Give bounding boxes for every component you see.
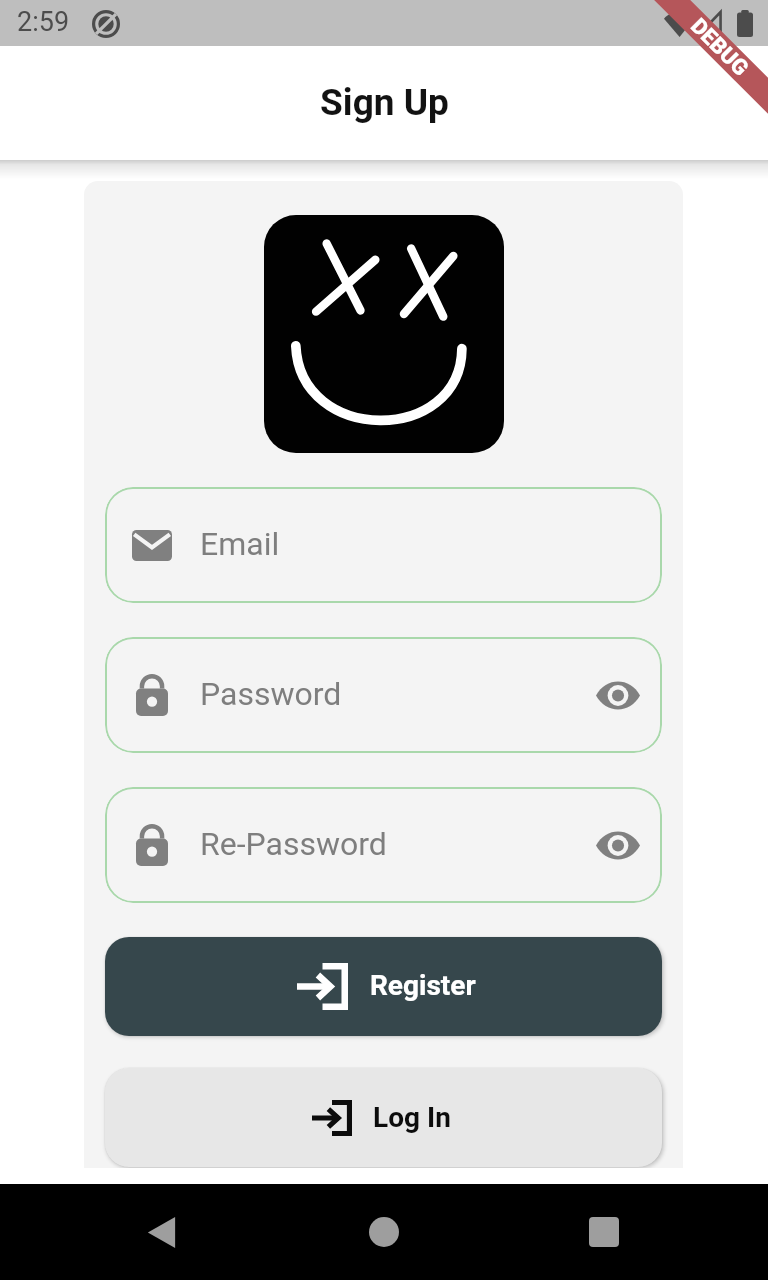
- button[interactable]: Email: [105, 487, 662, 603]
- staticText: Re-Password: [200, 825, 387, 863]
- button[interactable]: Log In: [105, 1068, 662, 1167]
- staticText: Register: [370, 969, 476, 1002]
- button[interactable]: Home: [344, 1192, 424, 1272]
- staticText: Password: [200, 675, 342, 713]
- button[interactable]: Re-Password: [105, 787, 662, 903]
- staticText: DEBUG: [685, 13, 754, 82]
- button[interactable]: Register: [105, 937, 662, 1036]
- button[interactable]: Toggle password visibility: [586, 813, 650, 877]
- button[interactable]: Password: [105, 637, 662, 753]
- button[interactable]: Back: [121, 1192, 201, 1272]
- staticText: Log In: [373, 1101, 451, 1134]
- staticText: 2:59: [17, 6, 70, 38]
- staticText: Sign Up: [320, 81, 449, 124]
- staticText: Email: [200, 525, 280, 563]
- button[interactable]: Toggle password visibility: [586, 663, 650, 727]
- button[interactable]: Recent apps: [564, 1192, 644, 1272]
